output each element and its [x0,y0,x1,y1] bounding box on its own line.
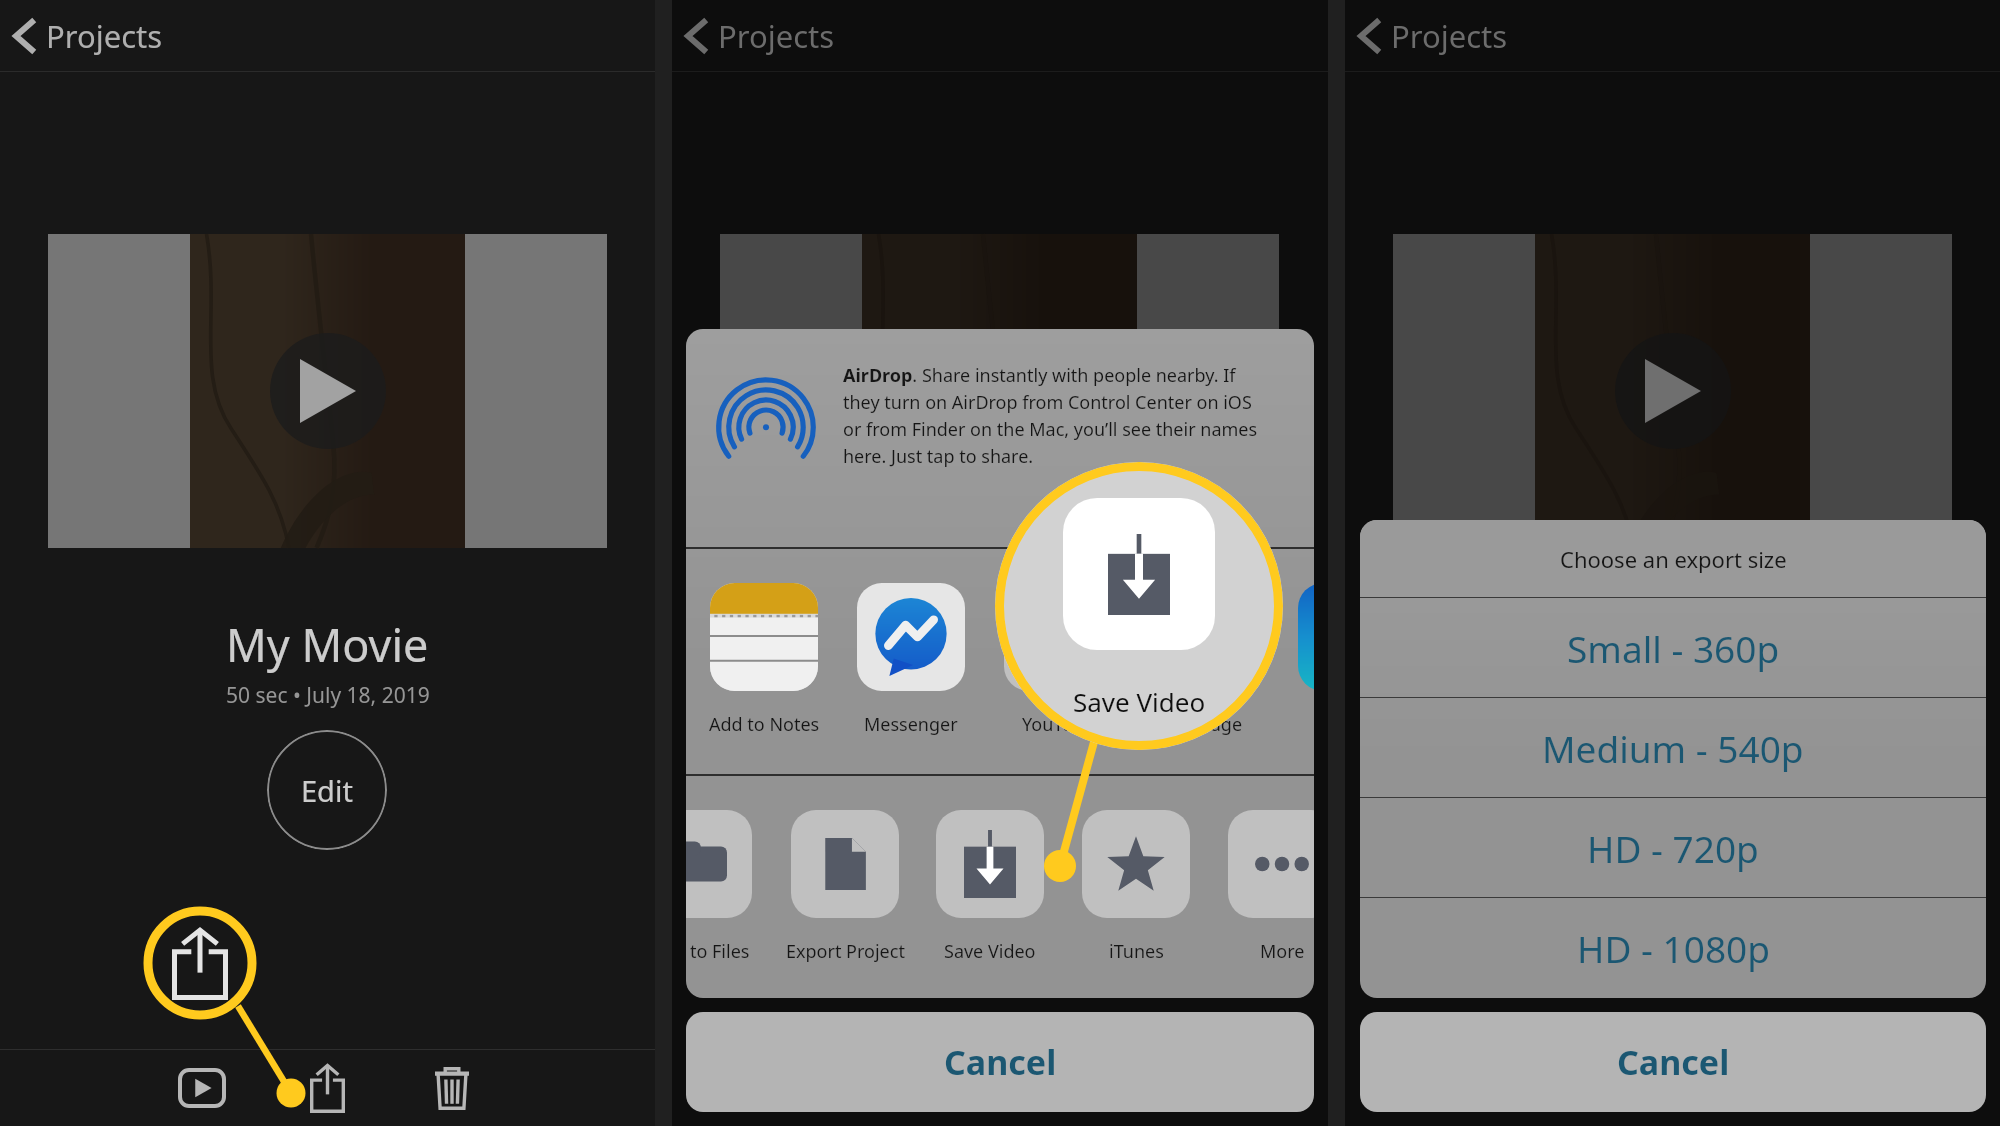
button[interactable]: Messenger [787,583,1035,753]
staticText: Export Project [786,939,905,964]
staticText: HD - 720p [1587,823,1759,873]
button[interactable]: Message [1081,583,1314,753]
staticText: Save Video [944,939,1036,964]
staticText: 50 sec • July 18, 2019 [226,681,430,710]
button[interactable]: Play video [942,333,1058,449]
button[interactable]: Cancel [686,1012,1314,1112]
button[interactable]: Add to Notes [686,583,888,753]
button[interactable]: Save to Files [686,776,822,998]
staticText: Projects [1391,15,1508,57]
button[interactable]: Edit [267,730,387,850]
staticText: Cancel [944,1039,1057,1085]
staticText: AirDrop. Share instantly with people nea… [843,363,1267,468]
button[interactable]: Back to Projects [672,0,872,71]
button[interactable]: Medium - 540p [1360,698,1986,797]
button[interactable]: Cancel [1360,1012,1986,1112]
staticText: Medium - 540p [1542,723,1804,773]
button[interactable]: YouTube [934,583,1182,753]
button[interactable]: Share [282,1050,372,1126]
button[interactable]: Play video [270,333,386,449]
staticText: Save Video [1073,684,1206,719]
button[interactable]: HD - 720p [1360,798,1986,897]
button[interactable]: Play movie [157,1050,247,1126]
staticText: Message [1167,712,1243,737]
staticText: Messenger [864,712,958,737]
button[interactable]: Back to Projects [0,0,200,71]
staticText: Small - 360p [1567,623,1780,673]
staticText: Choose an export size [1560,544,1787,574]
staticText: Add to Notes [709,712,820,737]
staticText: Save to Files [686,939,750,964]
staticText: Cancel [1617,1039,1730,1085]
button[interactable]: More [1158,776,1314,998]
staticText: Projects [718,15,835,57]
staticText: HD - 1080p [1577,923,1770,973]
staticText: Projects [46,15,163,57]
button[interactable]: Export Project [721,776,969,998]
staticText: More [1260,939,1305,964]
button[interactable]: HD - 1080p [1360,898,1986,997]
staticText: My Movie [226,614,429,675]
staticText: YouTube [1022,712,1095,737]
button[interactable]: Small - 360p [1360,598,1986,697]
button[interactable]: Back to Projects [1345,0,1545,71]
button[interactable]: Save Video [866,776,1114,998]
button[interactable]: iTunes [1012,776,1260,998]
staticText: Edit [301,771,353,810]
staticText: iTunes [1109,939,1164,964]
button[interactable]: Delete [407,1050,497,1126]
button[interactable]: Play video [1615,333,1731,449]
